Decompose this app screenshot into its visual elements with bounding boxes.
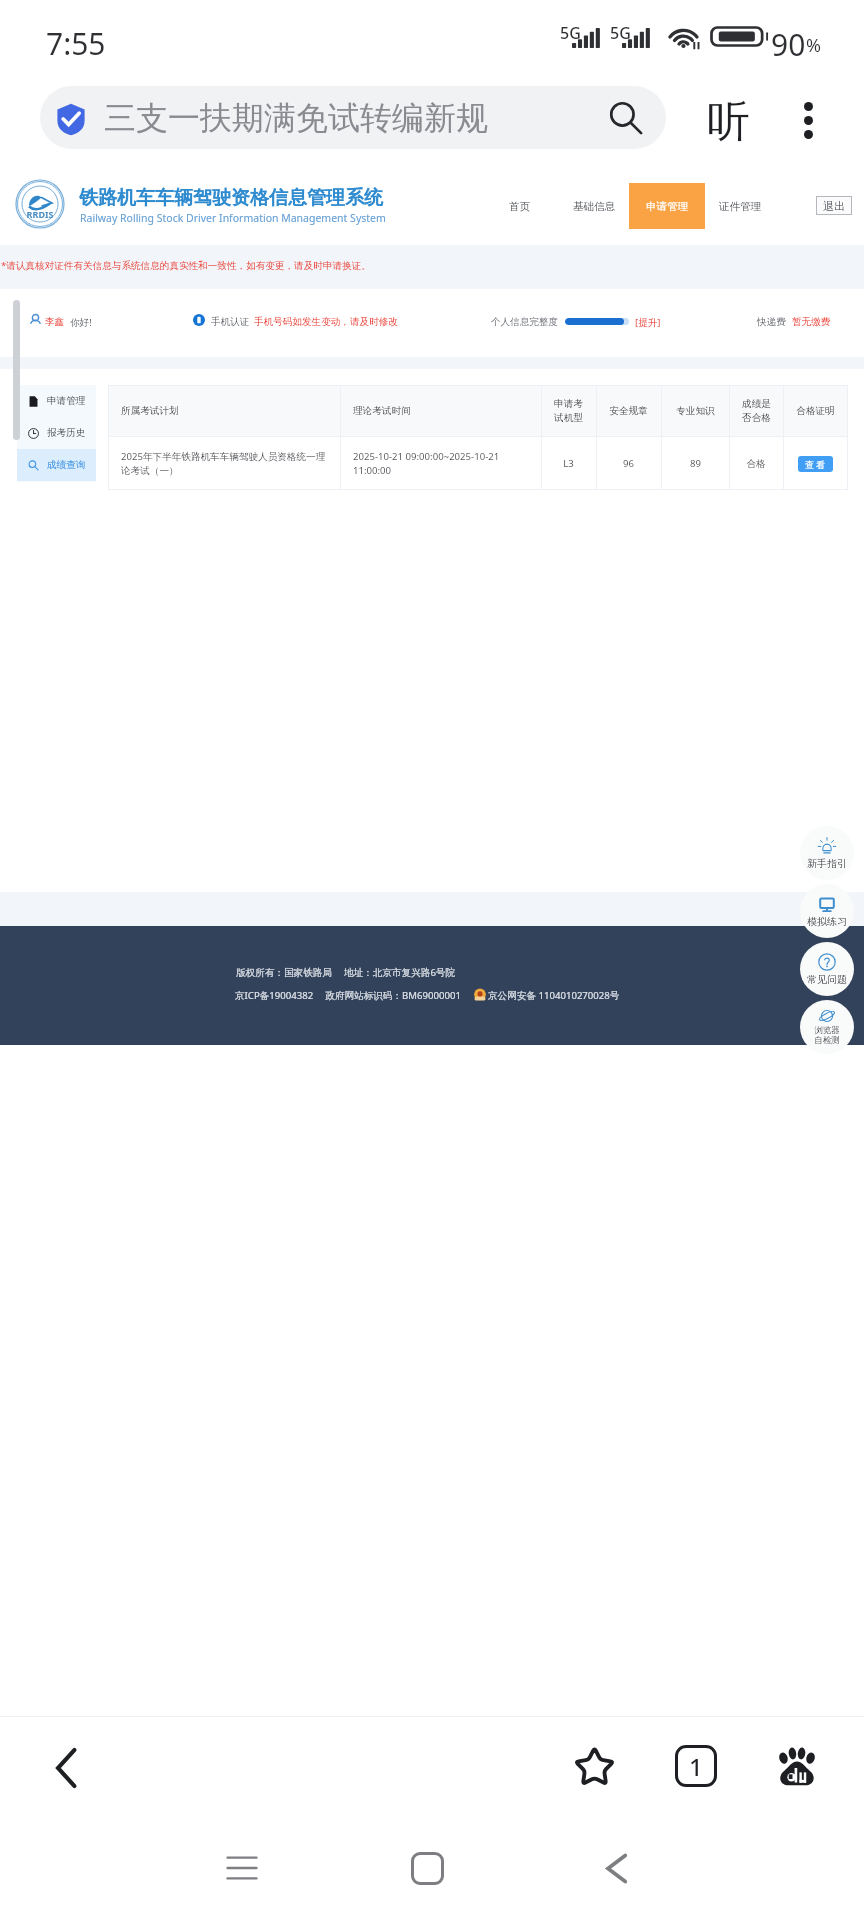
- other: Search: [608, 100, 644, 136]
- button[interactable]: Baidu home: [767, 1736, 827, 1796]
- button[interactable]: More options: [778, 89, 838, 152]
- staticText: L3: [563, 457, 574, 470]
- staticText: 三支一扶期满免试转编新规: [104, 98, 488, 138]
- staticText: 手机认证: [211, 316, 250, 328]
- staticText: 申请管理: [646, 200, 688, 213]
- staticText: RRDIS: [24, 208, 56, 220]
- staticText: 96: [623, 457, 634, 470]
- button[interactable]: 常见问题: [800, 942, 854, 996]
- staticText: 2025-10-21 09:00:00~2025-10-21 11:00:00: [353, 450, 528, 477]
- staticText: 理论考试时间: [353, 405, 411, 417]
- staticText: 李鑫: [45, 316, 65, 328]
- button[interactable]: 首页: [496, 183, 542, 229]
- staticText: 申请管理: [47, 395, 86, 407]
- staticText: 报考历史: [47, 427, 86, 439]
- button[interactable]: 模拟练习: [800, 884, 854, 938]
- staticText: 成绩是 否合格: [742, 398, 771, 424]
- button[interactable]: 听: [686, 90, 770, 153]
- staticText: 快递费: [757, 316, 786, 328]
- staticText: 版权所有：国家铁路局 地址：北京市复兴路6号院: [236, 966, 456, 979]
- button[interactable]: 成绩查询: [17, 449, 96, 481]
- staticText: Railway Rolling Stock Driver Information…: [80, 211, 386, 225]
- button[interactable]: Bookmark: [564, 1736, 624, 1796]
- staticText: 所属考试计划: [121, 405, 179, 417]
- button[interactable]: 申请管理: [629, 183, 705, 229]
- staticText: 京ICP备19004382 政府网站标识码：BM69000001: [235, 989, 473, 1002]
- staticText: 安全规章: [609, 405, 648, 417]
- button[interactable]: 查 看: [798, 456, 833, 472]
- staticText: *请认真核对证件有关信息与系统信息的真实性和一致性，如有变更，请及时申请换证。: [1, 259, 371, 272]
- staticText: 合格: [746, 458, 766, 470]
- button[interactable]: Tabs: [666, 1736, 726, 1796]
- staticText: 浏览器 自检测: [814, 1025, 840, 1046]
- button[interactable]: 证件管理: [717, 183, 763, 229]
- staticText: 退出: [823, 199, 845, 213]
- staticText: 新手指引: [807, 857, 847, 870]
- button[interactable]: Back: [576, 1828, 656, 1908]
- button[interactable]: 报考历史: [17, 417, 96, 449]
- staticText: %: [806, 33, 821, 58]
- button[interactable]: 浏览器 自检测: [800, 1000, 854, 1054]
- staticText: 常见问题: [807, 973, 847, 986]
- button[interactable]: Recent apps: [202, 1828, 282, 1908]
- staticText: 7:55: [46, 23, 106, 64]
- staticText: 合格证明: [796, 405, 835, 417]
- button[interactable]: 基础信息: [571, 183, 617, 229]
- staticText: 听: [707, 95, 750, 149]
- staticText: 个人信息完整度: [491, 316, 559, 328]
- button[interactable]: Home: [387, 1828, 467, 1908]
- staticText: 专业知识: [676, 405, 715, 417]
- button[interactable]: 退出: [816, 196, 852, 215]
- staticText: 铁路机车车辆驾驶资格信息管理系统: [79, 186, 383, 210]
- staticText: 你好!: [70, 316, 92, 329]
- staticText: 基础信息: [573, 200, 615, 213]
- staticText: 首页: [509, 200, 530, 213]
- staticText: 89: [690, 457, 701, 470]
- button[interactable]: 三支一扶期满免试转编新规: [40, 86, 666, 149]
- button[interactable]: 申请管理: [17, 385, 96, 417]
- staticText: 5G: [610, 22, 631, 44]
- staticText: 5G: [560, 22, 581, 44]
- button[interactable]: Back: [36, 1738, 96, 1798]
- staticText: [提升]: [635, 316, 661, 329]
- staticText: 查 看: [805, 458, 826, 470]
- staticText: 90: [771, 24, 806, 65]
- staticText: 证件管理: [719, 200, 761, 213]
- staticText: 申请考 试机型: [554, 398, 583, 424]
- staticText: 1: [689, 1750, 703, 1783]
- staticText: 手机号码如发生变动，请及时修改: [254, 316, 398, 328]
- button[interactable]: 新手指引: [800, 826, 854, 880]
- staticText: 成绩查询: [47, 459, 86, 471]
- staticText: 模拟练习: [807, 915, 847, 928]
- staticText: 京公网安备 1104010270028号: [488, 989, 620, 1002]
- staticText: 2025年下半年铁路机车车辆驾驶人员资格统一理论考试（一）: [121, 450, 327, 477]
- staticText: 暂无缴费: [792, 316, 831, 328]
